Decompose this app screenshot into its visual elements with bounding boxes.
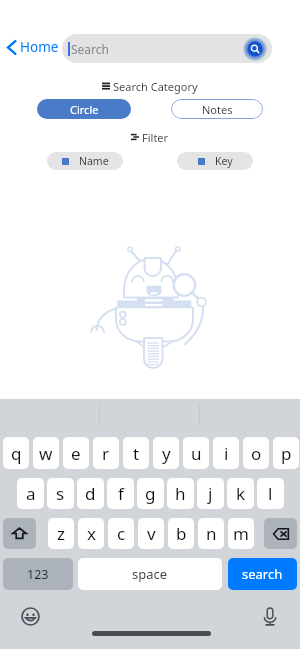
button[interactable]: Home [6, 38, 59, 56]
staticText: z [57, 522, 65, 545]
staticText: space [132, 565, 168, 583]
button[interactable]: d [77, 478, 104, 509]
staticText: q [11, 442, 22, 465]
staticText: v [147, 522, 156, 545]
staticText: h [175, 482, 186, 505]
staticText: search [242, 565, 283, 583]
button[interactable]: Circle [37, 99, 131, 119]
button[interactable]: e [63, 437, 89, 469]
staticText: r [102, 442, 110, 465]
button[interactable]: g [137, 478, 164, 509]
button[interactable]: a [17, 478, 44, 509]
button[interactable]: f [107, 478, 134, 509]
button[interactable]: Key [177, 152, 253, 170]
button[interactable]: j [197, 478, 224, 509]
button[interactable]: n [198, 518, 224, 549]
staticText: b [176, 522, 187, 545]
button[interactable]: o [243, 437, 269, 469]
staticText: m [233, 522, 249, 545]
staticText: w [39, 442, 53, 465]
button[interactable]: space [78, 558, 222, 590]
button[interactable]: Name [47, 152, 123, 170]
button[interactable]: r [93, 437, 119, 469]
button[interactable]: t [123, 437, 149, 469]
button[interactable]: search [228, 558, 297, 590]
button[interactable]: c [108, 518, 134, 549]
button[interactable]: u [183, 437, 209, 469]
button[interactable]: x [78, 518, 104, 549]
staticText: k [236, 482, 246, 505]
button[interactable]: w [33, 437, 59, 469]
staticText: y [162, 442, 171, 465]
button[interactable]: i [213, 437, 239, 469]
staticText: Circle [70, 102, 99, 117]
button[interactable]: q [3, 437, 29, 469]
staticText: Notes [202, 102, 233, 117]
button[interactable]: k [227, 478, 254, 509]
staticText: l [268, 482, 273, 505]
button[interactable]: l [257, 478, 284, 509]
staticText: t [133, 442, 140, 465]
button[interactable]: h [167, 478, 194, 509]
button[interactable]: Search [243, 37, 267, 61]
button[interactable]: p [273, 437, 299, 469]
button[interactable]: Dictate [258, 604, 282, 628]
button[interactable]: Backspace [264, 518, 297, 549]
staticText: j [208, 482, 213, 505]
button[interactable]: s [47, 478, 74, 509]
staticText: 123 [27, 566, 49, 583]
button[interactable]: 123 [3, 558, 73, 590]
staticText: o [251, 442, 262, 465]
button[interactable]: v [138, 518, 164, 549]
staticText: Key [215, 154, 233, 168]
staticText: a [26, 482, 36, 505]
staticText: x [87, 522, 96, 545]
staticText: n [206, 522, 217, 545]
button[interactable]: b [168, 518, 194, 549]
staticText: g [145, 482, 156, 505]
button[interactable]: Search [62, 34, 272, 63]
button[interactable]: y [153, 437, 179, 469]
button[interactable]: Shift [3, 518, 36, 549]
staticText: s [56, 482, 65, 505]
button[interactable]: Emoji [18, 604, 42, 628]
staticText: Search Category [113, 79, 198, 94]
button[interactable]: Notes [171, 99, 263, 119]
staticText: i [224, 442, 229, 465]
staticText: u [191, 442, 202, 465]
button[interactable]: m [228, 518, 254, 549]
staticText: e [71, 442, 81, 465]
staticText: Search [71, 41, 109, 57]
button[interactable]: z [48, 518, 74, 549]
staticText: Filter [142, 130, 169, 145]
staticText: c [117, 522, 126, 545]
staticText: Home [20, 38, 59, 56]
staticText: f [118, 482, 124, 505]
staticText: p [281, 442, 292, 465]
staticText: Name [79, 154, 109, 168]
staticText: d [85, 482, 96, 505]
